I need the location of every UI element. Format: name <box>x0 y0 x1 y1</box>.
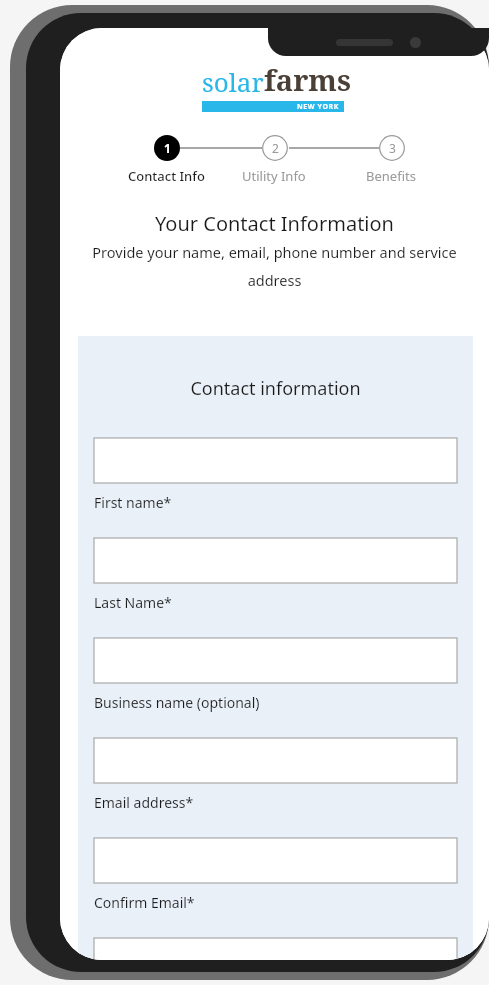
staticText: 2 <box>272 140 279 156</box>
button[interactable]: First name* input <box>94 438 457 483</box>
staticText: NEW YORK <box>297 102 340 112</box>
staticText: Email address* <box>94 793 194 812</box>
staticText: 1 <box>164 140 171 156</box>
button[interactable]: 3 <box>379 135 405 161</box>
staticText: Your Contact Information <box>60 210 489 237</box>
button[interactable]: Contact Info <box>128 167 205 185</box>
staticText: 3 <box>389 140 396 156</box>
staticText: Business name (optional) <box>94 693 260 712</box>
button[interactable]: Solar Farms New York logo <box>202 60 351 112</box>
button[interactable]: Email address* input <box>94 738 457 783</box>
button[interactable]: 1 <box>154 135 180 161</box>
staticText: Confirm Email* <box>94 893 195 912</box>
button[interactable]: Phone number input <box>94 938 457 960</box>
button[interactable]: Utility Info <box>242 167 306 185</box>
staticText: First name* <box>94 493 172 512</box>
staticText: farms <box>264 60 351 99</box>
button[interactable]: Confirm Email* input <box>94 838 457 883</box>
staticText: solar <box>202 64 264 99</box>
button[interactable]: Business name (optional) input <box>94 638 457 683</box>
staticText: Last Name* <box>94 593 172 612</box>
button[interactable]: Last Name* input <box>94 538 457 583</box>
button[interactable]: 2 <box>262 135 288 161</box>
staticText: Contact information <box>78 376 473 401</box>
button[interactable]: Benefits <box>366 167 416 185</box>
staticText: Provide your name, email, phone number a… <box>84 242 465 290</box>
